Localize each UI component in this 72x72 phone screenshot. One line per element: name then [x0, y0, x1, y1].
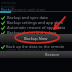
- staticText: Restore: [45, 52, 60, 57]
- button[interactable]: Restore: [0, 51, 72, 58]
- staticText: server automatically every day: [6, 47, 58, 52]
- staticText: Back up the data to the remote: [6, 44, 65, 49]
- staticText: Backup and sync data automatically: [7, 15, 72, 20]
- button[interactable]: Back up the data to the remote: [0, 43, 72, 51]
- staticText: backup and restore options: [1, 41, 40, 45]
- button[interactable]: Backup Now: [0, 34, 72, 42]
- staticText: Restore and reset: [12, 7, 46, 12]
- staticText: Backup: [1, 7, 13, 12]
- button[interactable]: Backup photos and videos: [0, 30, 72, 35]
- button[interactable]: Backup settings and app data: [0, 20, 72, 25]
- staticText: Backup settings and app data: [7, 20, 63, 25]
- staticText: settings: [1, 0, 16, 5]
- staticText: Backup Now: [24, 36, 48, 41]
- button[interactable]: Backup tab: [0, 7, 12, 13]
- button[interactable]: Restore tab: [12, 7, 46, 13]
- button[interactable]: Backup and sync data automatically: [0, 15, 72, 20]
- button[interactable]: Automatic restore of apps data: [0, 25, 72, 30]
- staticText: Backup photos and videos: [7, 30, 57, 35]
- staticText: backup: [1, 4, 15, 9]
- staticText: Automatic restore of apps data: [7, 25, 66, 30]
